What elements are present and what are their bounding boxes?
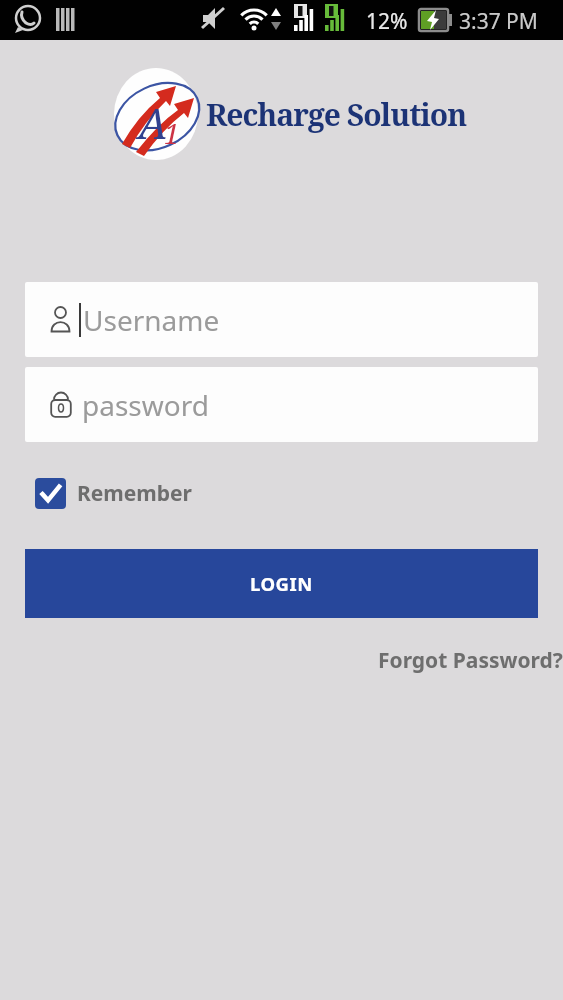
staticText: 1 [164, 114, 180, 152]
staticText: A [138, 94, 168, 151]
staticText: Username [83, 301, 220, 339]
button[interactable]: LOGIN [25, 549, 538, 618]
button[interactable]: Username [25, 282, 538, 357]
button[interactable]: Remember [35, 478, 192, 509]
staticText: 12% [366, 7, 408, 36]
staticText: Recharge Solution [206, 94, 467, 135]
staticText: LOGIN [250, 571, 313, 596]
staticText: password [82, 386, 209, 424]
staticText: 3:37 PM [459, 7, 538, 36]
staticText: Remember [77, 479, 192, 508]
button[interactable]: password [25, 367, 538, 442]
button[interactable]: Forgot Password? [378, 646, 563, 675]
